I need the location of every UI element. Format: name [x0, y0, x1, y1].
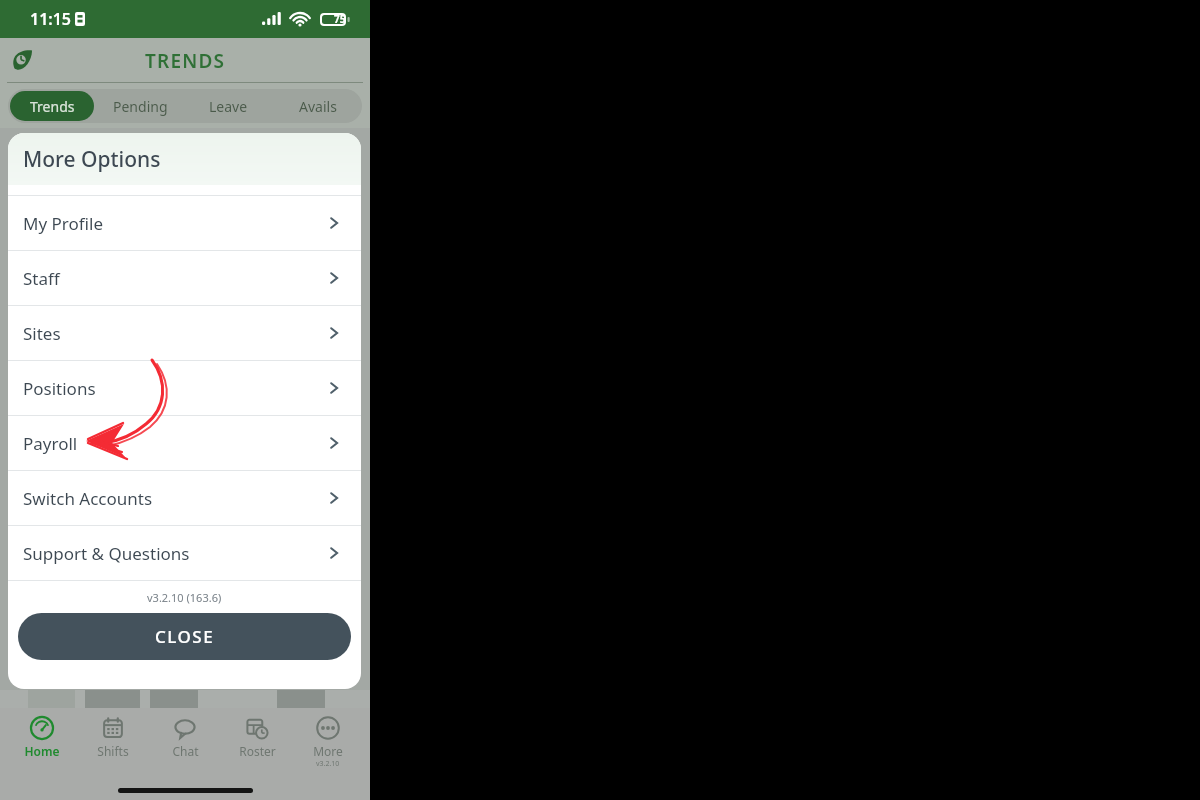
staticText: Leave: [209, 97, 248, 116]
staticText: Roster: [239, 743, 276, 759]
button[interactable]: Home: [12, 714, 72, 761]
button[interactable]: Avails: [275, 91, 360, 121]
staticText: Chat: [172, 743, 199, 759]
staticText: Sites: [23, 322, 61, 345]
staticText: CLOSE: [155, 625, 215, 648]
staticText: v3.2.10: [316, 759, 340, 769]
staticText: 11:15: [30, 8, 72, 30]
button[interactable]: Leave: [186, 91, 271, 121]
staticText: Shifts: [97, 743, 129, 759]
staticText: Positions: [23, 377, 96, 400]
button[interactable]: CLOSE: [18, 613, 351, 660]
staticText: Switch Accounts: [23, 487, 153, 510]
button[interactable]: Payroll: [8, 416, 361, 470]
staticText: Support & Questions: [23, 542, 190, 565]
button[interactable]: Sites: [8, 306, 361, 360]
button[interactable]: Pending: [98, 91, 182, 121]
button[interactable]: Positions: [8, 361, 361, 415]
staticText: Avails: [299, 97, 337, 116]
button[interactable]: Staff: [8, 251, 361, 305]
staticText: More Options: [23, 145, 161, 174]
staticText: My Profile: [23, 212, 103, 235]
staticText: TRENDS: [145, 48, 226, 74]
button[interactable]: Roster: [227, 714, 287, 761]
button[interactable]: Switch Accounts: [8, 471, 361, 525]
button[interactable]: More: [298, 714, 358, 771]
button[interactable]: My Profile: [8, 196, 361, 250]
staticText: Home: [24, 743, 60, 759]
staticText: Pending: [113, 97, 168, 116]
staticText: 75: [334, 12, 346, 26]
staticText: More: [313, 743, 343, 759]
button[interactable]: Shifts: [83, 714, 143, 761]
staticText: Payroll: [23, 432, 78, 455]
staticText: Staff: [23, 267, 60, 290]
button[interactable]: Trends: [10, 91, 94, 121]
staticText: Trends: [30, 97, 75, 116]
button[interactable]: Chat: [155, 714, 215, 761]
staticText: v3.2.10 (163.6): [147, 590, 222, 605]
button[interactable]: Support & Questions: [8, 526, 361, 580]
